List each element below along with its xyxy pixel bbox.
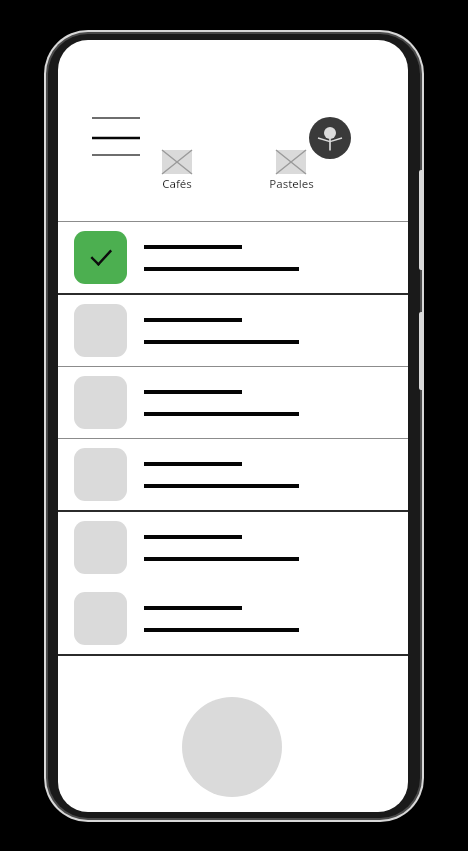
button[interactable] (58, 222, 408, 293)
button[interactable] (58, 583, 408, 654)
button[interactable] (58, 295, 408, 366)
button[interactable]: Add (182, 697, 282, 797)
button[interactable]: Pasteles (246, 150, 336, 192)
button[interactable] (58, 367, 408, 438)
button[interactable]: Cafés (132, 150, 222, 192)
button[interactable] (58, 512, 408, 583)
button[interactable] (58, 439, 408, 510)
staticText: Pasteles (269, 176, 314, 192)
button[interactable]: Profile (309, 117, 351, 159)
staticText: Cafés (162, 176, 192, 192)
button[interactable]: Menu (84, 102, 146, 164)
